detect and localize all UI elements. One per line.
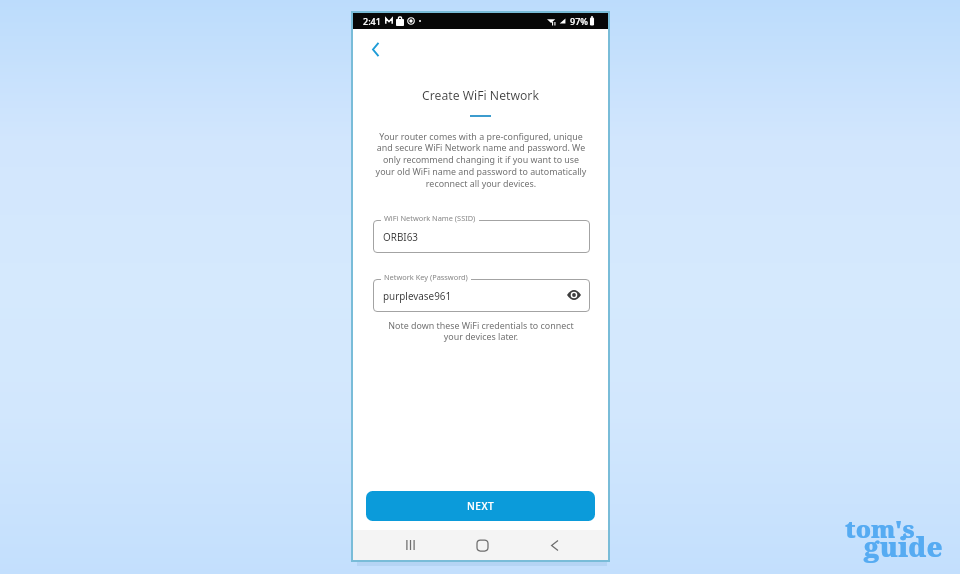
staticText: 2:41 <box>363 15 381 27</box>
button[interactable]: Recents <box>395 530 425 560</box>
button[interactable]: ORBI63 <box>373 220 590 253</box>
staticText: Your router comes with a pre-configured,… <box>374 130 588 190</box>
staticText: Create WiFi Network <box>353 87 608 104</box>
staticText: Network Key (Password) <box>384 272 468 282</box>
button[interactable]: Back <box>360 34 390 64</box>
staticText: tom's <box>845 512 915 545</box>
button[interactable]: Back <box>539 530 569 560</box>
button[interactable]: purplevase961 <box>373 279 590 312</box>
button[interactable]: Show password <box>565 286 583 304</box>
button[interactable]: NEXT <box>366 491 595 521</box>
staticText: WiFi Network Name (SSID) <box>384 213 476 223</box>
staticText: NEXT <box>467 499 495 513</box>
staticText: Note down these WiFi credentials to conn… <box>386 319 576 343</box>
staticText: guide <box>864 528 943 565</box>
staticText: ORBI63 <box>383 230 418 243</box>
staticText: purplevase961 <box>383 289 452 302</box>
button[interactable]: Home <box>467 530 497 560</box>
staticText: 97% <box>570 15 588 27</box>
